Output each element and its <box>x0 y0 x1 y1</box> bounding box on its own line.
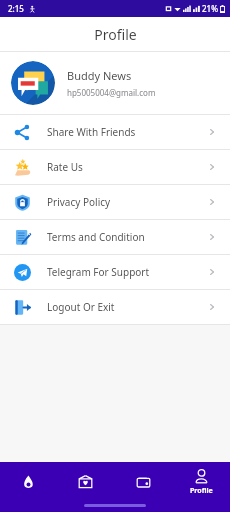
button[interactable]: Home <box>0 462 57 502</box>
button[interactable]: Profile <box>172 462 230 502</box>
staticText: Profile <box>190 486 213 496</box>
staticText: Terms and Condition <box>47 230 207 244</box>
staticText: 21% <box>202 3 218 14</box>
staticText: Buddy News <box>67 68 132 83</box>
staticText: Share With Friends <box>47 125 207 139</box>
button[interactable]: Telegram For Support <box>0 255 230 289</box>
staticText: 2:15 <box>8 3 24 14</box>
staticText: Telegram For Support <box>47 265 207 279</box>
staticText: Logout Or Exit <box>47 300 207 314</box>
button[interactable]: Buddy News <box>0 52 230 114</box>
staticText: Profile <box>94 25 137 44</box>
staticText: Rate Us <box>47 160 207 174</box>
button[interactable]: Messages <box>57 462 114 502</box>
staticText: hp5005004@gmail.com <box>67 87 156 98</box>
button[interactable]: Privacy Policy <box>0 185 230 219</box>
button[interactable]: Rate Us <box>0 150 230 184</box>
staticText: Privacy Policy <box>47 195 207 209</box>
button[interactable]: Terms and Condition <box>0 220 230 254</box>
button[interactable]: Logout Or Exit <box>0 290 230 324</box>
button[interactable]: Share With Friends <box>0 115 230 149</box>
button[interactable]: Wallet <box>114 462 172 502</box>
